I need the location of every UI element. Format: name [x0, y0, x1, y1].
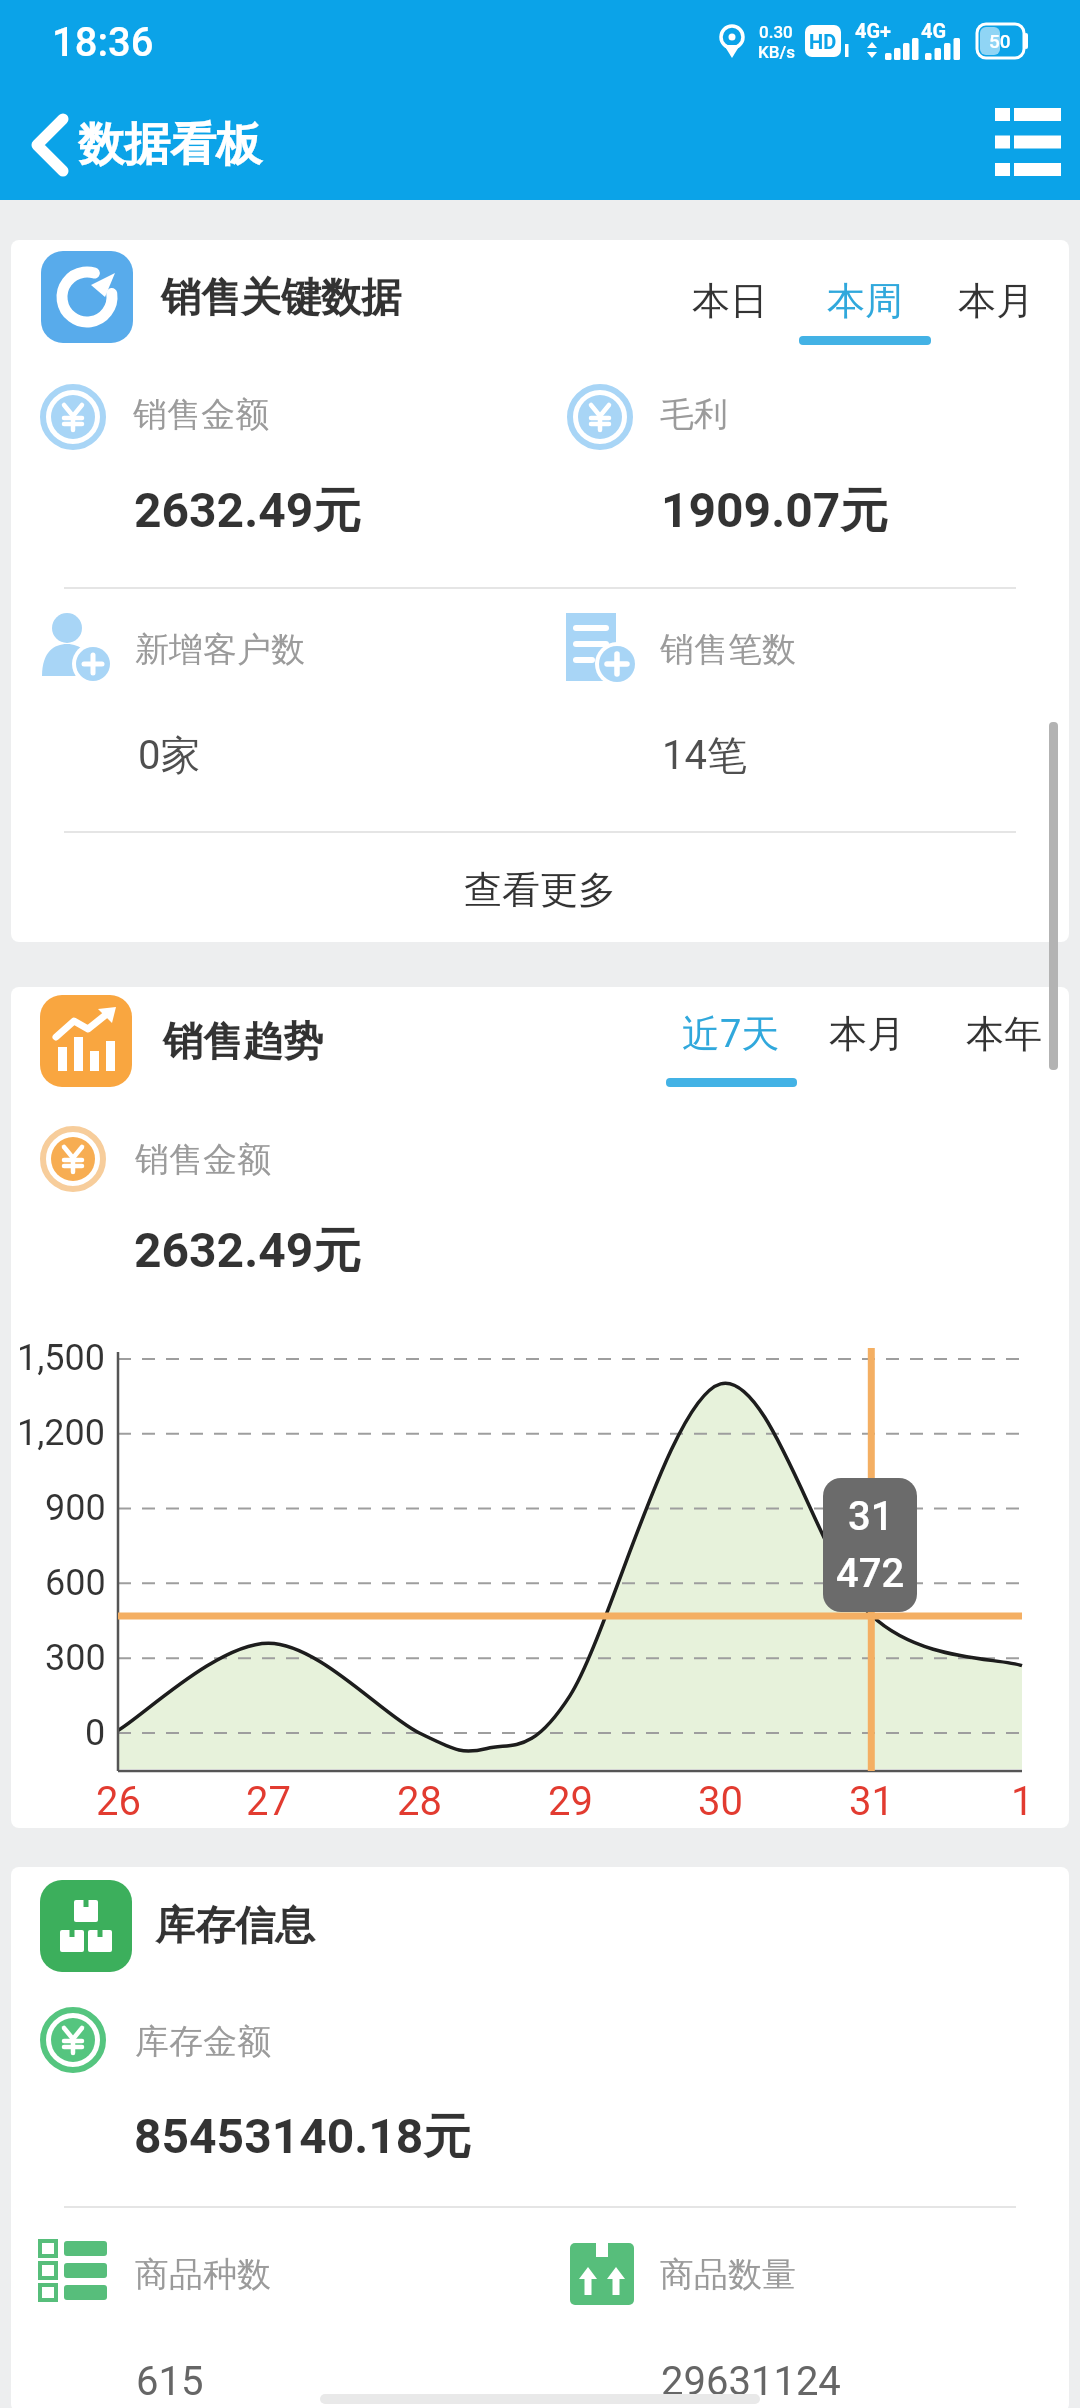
staticText: 18:36	[52, 19, 154, 66]
staticText: 销售金额	[133, 393, 269, 436]
staticText: 库存金额	[135, 2020, 271, 2063]
staticText: 29631124	[661, 2358, 841, 2405]
button[interactable]: 本月	[717, 994, 1017, 1074]
staticText: 1909.07元	[661, 481, 889, 541]
staticText: 近7天	[682, 1010, 780, 1058]
staticText: 商品数量	[660, 2253, 796, 2296]
staticText: 300	[45, 1637, 106, 1679]
staticText: 数据看板	[78, 116, 262, 174]
button[interactable]: 近7天	[581, 994, 881, 1074]
staticText: 50	[989, 30, 1011, 52]
staticText: 2632.49元	[134, 481, 362, 541]
staticText: 27	[246, 1778, 291, 1825]
staticText: 0家	[138, 730, 201, 780]
staticText: 本年	[966, 1010, 1042, 1058]
staticText: HD	[809, 30, 837, 53]
staticText: 1,500	[17, 1337, 106, 1379]
staticText: 库存信息	[155, 1900, 315, 1950]
staticText: 查看更多	[464, 866, 616, 914]
staticText: 0	[85, 1712, 106, 1754]
button[interactable]: 本日	[580, 261, 880, 341]
button[interactable]: 本年	[854, 994, 1080, 1074]
staticText: 商品种数	[135, 2253, 271, 2296]
staticText: 新增客户数	[135, 628, 305, 671]
staticText: 28	[397, 1778, 442, 1825]
button[interactable]: 查看更多	[390, 850, 690, 930]
staticText: 本周	[827, 277, 903, 325]
staticText: 31	[848, 1493, 894, 1540]
staticText: KB/s	[758, 42, 795, 62]
staticText: 1,200	[17, 1412, 106, 1454]
staticText: 472	[836, 1550, 905, 1597]
staticText: 2632.49元	[134, 1221, 362, 1281]
staticText: 30	[698, 1778, 743, 1825]
staticText: 毛利	[660, 393, 728, 436]
staticText: 0.30	[759, 22, 793, 42]
button[interactable]	[962, 92, 1062, 192]
staticText: 900	[45, 1487, 106, 1529]
staticText: 14笔	[662, 730, 747, 780]
staticText: 销售金额	[135, 1138, 271, 1181]
staticText: 本日	[692, 277, 768, 325]
staticText: 26	[96, 1778, 141, 1825]
staticText: 4G	[921, 19, 947, 42]
staticText: 615	[136, 2358, 204, 2405]
staticText: 1	[1011, 1778, 1034, 1825]
staticText: 29	[548, 1778, 593, 1825]
staticText: 销售趋势	[163, 1016, 323, 1066]
staticText: 本月	[958, 277, 1034, 325]
staticText: 销售关键数据	[161, 272, 401, 322]
button[interactable]: 数据看板	[20, 105, 300, 185]
button[interactable]: 本周	[715, 261, 1015, 341]
staticText: 31	[849, 1778, 894, 1825]
staticText: 4G+	[855, 19, 892, 42]
staticText: 本月	[829, 1010, 905, 1058]
staticText: 85453140.18元	[134, 2107, 472, 2167]
staticText: 600	[45, 1562, 106, 1604]
staticText: 销售笔数	[660, 628, 796, 671]
button[interactable]: 本月	[846, 261, 1080, 341]
